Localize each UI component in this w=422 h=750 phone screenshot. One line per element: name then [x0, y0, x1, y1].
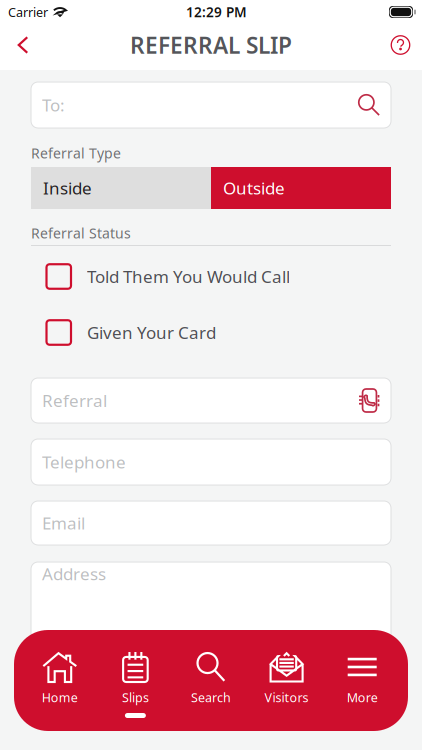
button[interactable]: Referral — [31, 378, 391, 423]
staticText: Slips — [122, 689, 149, 706]
button[interactable]: Address — [31, 562, 391, 687]
button[interactable]: Outside — [211, 167, 391, 209]
staticText: More — [347, 689, 378, 706]
button[interactable]: Search — [173, 630, 249, 731]
staticText: Visitors — [265, 689, 309, 706]
button[interactable]: Back — [7, 29, 39, 61]
staticText: Given Your Card — [87, 321, 216, 344]
staticText: Told Them You Would Call — [87, 265, 290, 288]
button[interactable]: Slips — [98, 630, 173, 731]
staticText: Outside — [223, 176, 285, 200]
button[interactable]: Help — [384, 29, 417, 61]
button[interactable]: Telephone — [31, 439, 391, 485]
staticText: Referral — [42, 389, 107, 412]
staticText: Email — [42, 511, 85, 535]
staticText: Carrier — [8, 3, 48, 21]
button[interactable]: Given Your Card — [46, 320, 391, 345]
staticText: Referral Status — [31, 223, 131, 243]
button[interactable]: To: — [31, 82, 391, 128]
button[interactable]: Home — [22, 630, 98, 731]
button[interactable]: Told Them You Would Call — [46, 264, 391, 289]
staticText: REFERRAL SLIP — [130, 29, 292, 60]
staticText: Inside — [43, 176, 92, 200]
staticText: Address — [42, 562, 106, 585]
button[interactable]: Email — [31, 501, 391, 545]
staticText: 12:29 PM — [186, 3, 247, 21]
staticText: Search — [191, 689, 231, 706]
staticText: Telephone — [42, 450, 126, 474]
button[interactable]: Visitors — [249, 630, 324, 731]
staticText: To: — [42, 93, 65, 117]
button[interactable]: More — [324, 630, 400, 731]
staticText: Home — [42, 689, 78, 706]
staticText: Referral Type — [31, 143, 121, 163]
button[interactable]: Inside — [31, 167, 211, 209]
